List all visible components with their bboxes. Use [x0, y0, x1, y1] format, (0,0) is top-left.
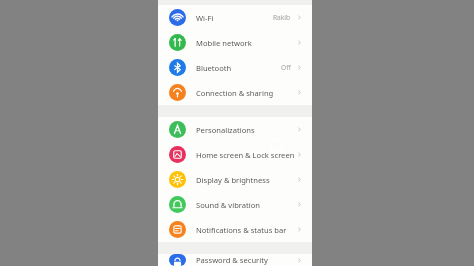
- button[interactable]: Connection & sharing: [158, 80, 312, 105]
- staticText: Password & security: [196, 255, 268, 265]
- button[interactable]: Sound & vibration: [158, 192, 312, 217]
- button[interactable]: Notifications & status bar: [158, 217, 312, 242]
- staticText: Off: [281, 63, 291, 72]
- button[interactable]: Bluetooth: [158, 55, 312, 80]
- staticText: Home screen & Lock screen: [196, 150, 295, 160]
- button[interactable]: Mobile network: [158, 30, 312, 55]
- staticText: Bluetooth: [196, 63, 232, 73]
- staticText: Mobile network: [196, 38, 252, 48]
- staticText: Connection & sharing: [196, 88, 274, 98]
- staticText: Display & brightness: [196, 175, 270, 185]
- button[interactable]: Password & security: [158, 254, 312, 266]
- button[interactable]: Display & brightness: [158, 167, 312, 192]
- staticText: Rakib: [273, 13, 291, 22]
- button[interactable]: Home screen & Lock screen: [158, 142, 312, 167]
- staticText: Sound & vibration: [196, 200, 261, 210]
- staticText: Personalizations: [196, 125, 255, 135]
- button[interactable]: Wi-Fi: [158, 5, 312, 30]
- staticText: Notifications & status bar: [196, 225, 287, 235]
- button[interactable]: Personalizations: [158, 117, 312, 142]
- staticText: Wi-Fi: [196, 13, 214, 23]
